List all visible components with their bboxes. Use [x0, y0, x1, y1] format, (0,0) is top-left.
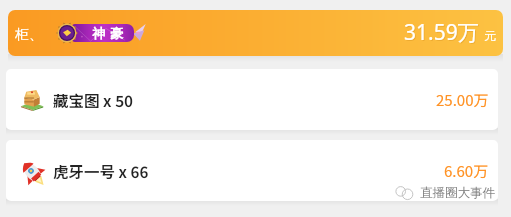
staticText: 元: [484, 28, 496, 43]
staticText: 虎牙一号 x 66: [53, 160, 149, 182]
other: 虎牙一号: [19, 159, 44, 184]
button[interactable]: 虎牙一号: [6, 140, 498, 201]
staticText: 柜、: [15, 26, 43, 44]
other: 藏宝图: [20, 87, 44, 111]
staticText: 直播圈大事件: [420, 185, 495, 201]
button[interactable]: 柜、: [8, 10, 503, 56]
staticText: 25.00万: [436, 89, 489, 111]
button[interactable]: 藏宝图: [6, 69, 498, 130]
staticText: 藏宝图 x 50: [53, 89, 133, 111]
staticText: 神豪: [90, 25, 126, 41]
staticText: 31.59万: [404, 18, 479, 47]
staticText: 6.60万: [444, 160, 489, 182]
staticText: 31.59万: [405, 19, 480, 48]
